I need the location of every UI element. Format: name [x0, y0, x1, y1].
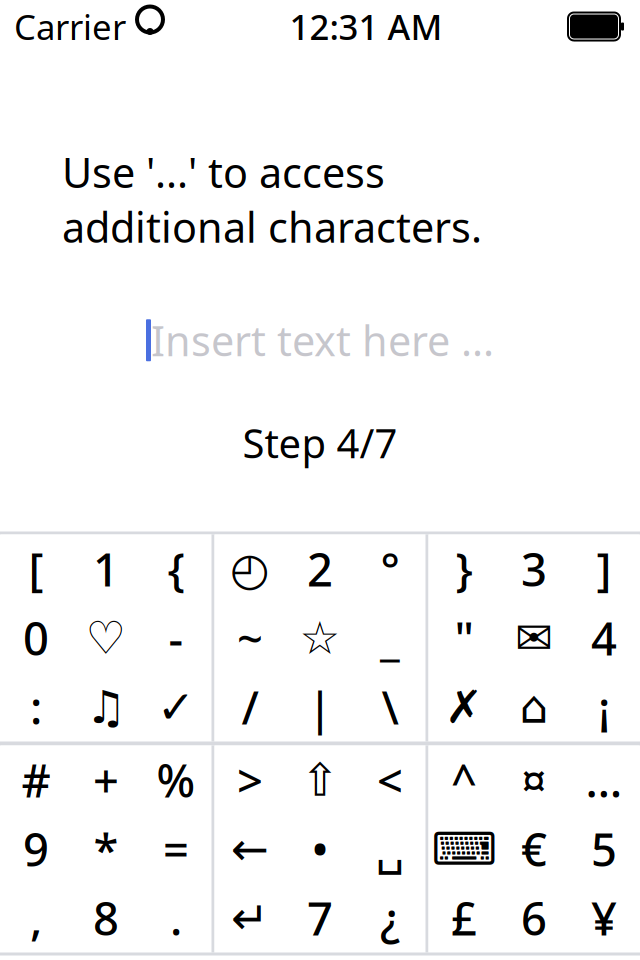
button[interactable]: ◴ — [215, 534, 285, 603]
staticText: " — [454, 608, 473, 668]
staticText: ☆ — [299, 612, 340, 664]
staticText: ␣ — [375, 823, 404, 875]
button[interactable]: , — [1, 883, 71, 952]
button[interactable]: 1 — [71, 534, 141, 603]
staticText: Carrier — [14, 3, 126, 49]
button[interactable]: - — [141, 603, 211, 672]
staticText: ⌂ — [519, 681, 548, 733]
staticText: + — [93, 750, 119, 810]
staticText: 7 — [307, 888, 333, 948]
staticText: 1 — [93, 539, 119, 599]
button[interactable]: ¿ — [355, 883, 425, 952]
button[interactable]: < — [355, 745, 425, 814]
button[interactable]: [ — [1, 534, 71, 603]
button[interactable]: / — [215, 672, 285, 741]
button[interactable]: { — [141, 534, 211, 603]
button[interactable]: ♡ — [71, 603, 141, 672]
staticText: _ — [380, 608, 400, 668]
staticText: ¥ — [591, 888, 617, 948]
button[interactable]: ☆ — [285, 603, 355, 672]
staticText: ◴ — [230, 543, 270, 595]
button[interactable]: 5 — [569, 814, 639, 883]
staticText: < — [377, 750, 403, 810]
staticText: | — [307, 677, 332, 737]
staticText: ✉ — [515, 612, 553, 664]
staticText: ¤ — [521, 750, 547, 810]
button[interactable]: ⇧ — [285, 745, 355, 814]
button[interactable]: ♫ — [71, 672, 141, 741]
staticText: Step 4/7 — [242, 416, 397, 469]
staticText: 8 — [93, 888, 119, 948]
staticText: 6 — [521, 888, 547, 948]
button[interactable]: > — [215, 745, 285, 814]
button[interactable]: ✓ — [141, 672, 211, 741]
staticText: ⇧ — [301, 754, 339, 806]
staticText: 9 — [23, 819, 49, 879]
staticText: 4 — [591, 608, 617, 668]
button[interactable]: Insert text here ... — [0, 310, 640, 370]
staticText: 2 — [307, 539, 333, 599]
staticText: ^ — [451, 750, 477, 810]
button[interactable]: . — [141, 883, 211, 952]
button[interactable]: # — [1, 745, 71, 814]
button[interactable]: 9 — [1, 814, 71, 883]
button[interactable]: + — [71, 745, 141, 814]
button[interactable]: ^ — [429, 745, 499, 814]
button[interactable]: ¥ — [569, 883, 639, 952]
button[interactable]: } — [429, 534, 499, 603]
button[interactable]: ✉ — [499, 603, 569, 672]
button[interactable]: 4 — [569, 603, 639, 672]
button[interactable]: £ — [429, 883, 499, 952]
staticText: Use '...' to access additional character… — [62, 144, 482, 254]
button[interactable]: ⌂ — [499, 672, 569, 741]
staticText: ♡ — [85, 612, 126, 664]
button[interactable]: ¤ — [499, 745, 569, 814]
staticText: = — [163, 819, 189, 879]
button[interactable]: : — [1, 672, 71, 741]
button[interactable]: 2 — [285, 534, 355, 603]
button[interactable]: \ — [355, 672, 425, 741]
button[interactable]: % — [141, 745, 211, 814]
button[interactable]: • — [285, 814, 355, 883]
staticText: • — [311, 819, 328, 879]
button[interactable]: € — [499, 814, 569, 883]
staticText: # — [21, 750, 50, 810]
button[interactable]: ° — [355, 534, 425, 603]
button[interactable]: ¡ — [569, 672, 639, 741]
button[interactable]: ✗ — [429, 672, 499, 741]
staticText: } — [455, 539, 472, 599]
button[interactable]: ] — [569, 534, 639, 603]
button[interactable]: = — [141, 814, 211, 883]
button[interactable]: 0 — [1, 603, 71, 672]
staticText: ⌨ — [431, 823, 496, 875]
button[interactable]: ← — [215, 814, 285, 883]
button[interactable]: 6 — [499, 883, 569, 952]
staticText: [ — [28, 539, 43, 599]
button[interactable]: _ — [355, 603, 425, 672]
staticText: ✗ — [445, 681, 483, 733]
staticText: 5 — [591, 819, 617, 879]
staticText: ° — [380, 539, 399, 599]
button[interactable]: ~ — [215, 603, 285, 672]
staticText: . — [170, 888, 182, 948]
button[interactable]: ↵ — [215, 883, 285, 952]
button[interactable]: 7 — [285, 883, 355, 952]
staticText: > — [237, 750, 263, 810]
staticText: ✓ — [157, 681, 195, 733]
button[interactable]: 8 — [71, 883, 141, 952]
staticText: 0 — [23, 608, 49, 668]
button[interactable]: … — [569, 745, 639, 814]
button[interactable]: ⌨ — [429, 814, 499, 883]
staticText: 3 — [521, 539, 547, 599]
staticText: ← — [231, 823, 269, 875]
button[interactable]: ␣ — [355, 814, 425, 883]
staticText: ¿ — [380, 888, 400, 948]
staticText: ↵ — [231, 892, 269, 944]
staticText: % — [156, 750, 195, 810]
button[interactable]: | — [285, 672, 355, 741]
button[interactable]: * — [71, 814, 141, 883]
button[interactable]: " — [429, 603, 499, 672]
button[interactable]: 3 — [499, 534, 569, 603]
staticText: , — [30, 888, 42, 948]
staticText: ] — [596, 539, 611, 599]
